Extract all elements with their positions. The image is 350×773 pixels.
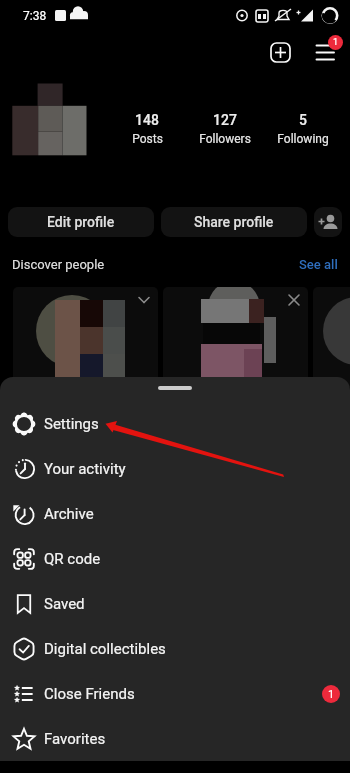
button[interactable]: New post (266, 38, 295, 67)
staticText: 148 (135, 112, 159, 128)
staticText: Saved (44, 595, 85, 613)
button[interactable] (313, 287, 350, 387)
button[interactable]: Digital collectibles (0, 626, 350, 671)
button[interactable]: See all (299, 257, 338, 272)
staticText: Settings (44, 415, 99, 433)
staticText: 127 (213, 112, 237, 128)
button[interactable]: Dismiss (163, 287, 308, 387)
button[interactable]: Share profile (161, 207, 307, 237)
button[interactable]: QR code (0, 536, 350, 581)
staticText: Archive (44, 505, 94, 523)
staticText: 7:38 (23, 9, 47, 23)
staticText: See all (299, 257, 338, 272)
staticText: Share profile (194, 214, 274, 230)
button[interactable]: 127 (186, 112, 264, 146)
staticText: 1 (333, 37, 339, 48)
button[interactable]: Menu (311, 38, 340, 67)
staticText: Discover people (12, 257, 105, 272)
staticText: Digital collectibles (44, 640, 166, 658)
button[interactable]: Drag handle (158, 386, 192, 390)
staticText: Your activity (44, 460, 126, 478)
staticText: Close Friends (44, 685, 135, 703)
staticText: Followers (199, 132, 251, 146)
button[interactable]: Saved (0, 581, 350, 626)
button[interactable]: Discover people (314, 207, 342, 237)
staticText: 1 (328, 688, 335, 701)
button[interactable]: Edit profile (8, 207, 154, 237)
staticText: QR code (44, 550, 101, 568)
staticText: Following (277, 132, 329, 146)
button[interactable]: Settings (0, 401, 350, 446)
staticText: Favorites (44, 730, 106, 748)
button[interactable]: Expand (134, 290, 154, 310)
button[interactable]: Close Friends (0, 671, 350, 716)
staticText: 5 (299, 112, 307, 128)
button[interactable]: Dismiss (284, 290, 304, 310)
button[interactable]: Archive (0, 491, 350, 536)
button[interactable]: Expand (13, 287, 158, 387)
button[interactable]: 148 (108, 112, 186, 146)
staticText: Edit profile (47, 214, 115, 230)
button[interactable]: 5 (264, 112, 342, 146)
button[interactable]: Favorites (0, 716, 350, 761)
staticText: Posts (132, 132, 163, 146)
button[interactable]: Your activity (0, 446, 350, 491)
